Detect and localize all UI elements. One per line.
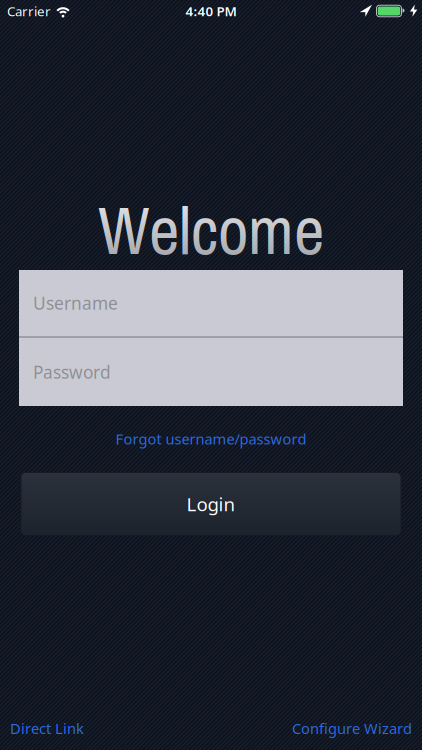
button[interactable]: Forgot username/password [115, 429, 306, 448]
staticText: Forgot username/password [115, 429, 306, 448]
staticText: Username [33, 291, 118, 314]
button[interactable]: Login [21, 472, 401, 535]
staticText: Welcome [98, 185, 324, 275]
button[interactable]: Direct Link [10, 718, 84, 738]
staticText: Login [186, 492, 235, 516]
staticText: Configure Wizard [292, 718, 412, 738]
staticText: Password [33, 360, 111, 383]
button[interactable]: Username [19, 270, 403, 336]
staticText: 4:40 PM [185, 2, 236, 20]
button[interactable]: Password [19, 338, 403, 406]
button[interactable]: Configure Wizard [292, 718, 412, 738]
staticText: Carrier [7, 2, 51, 20]
staticText: Direct Link [10, 718, 84, 738]
